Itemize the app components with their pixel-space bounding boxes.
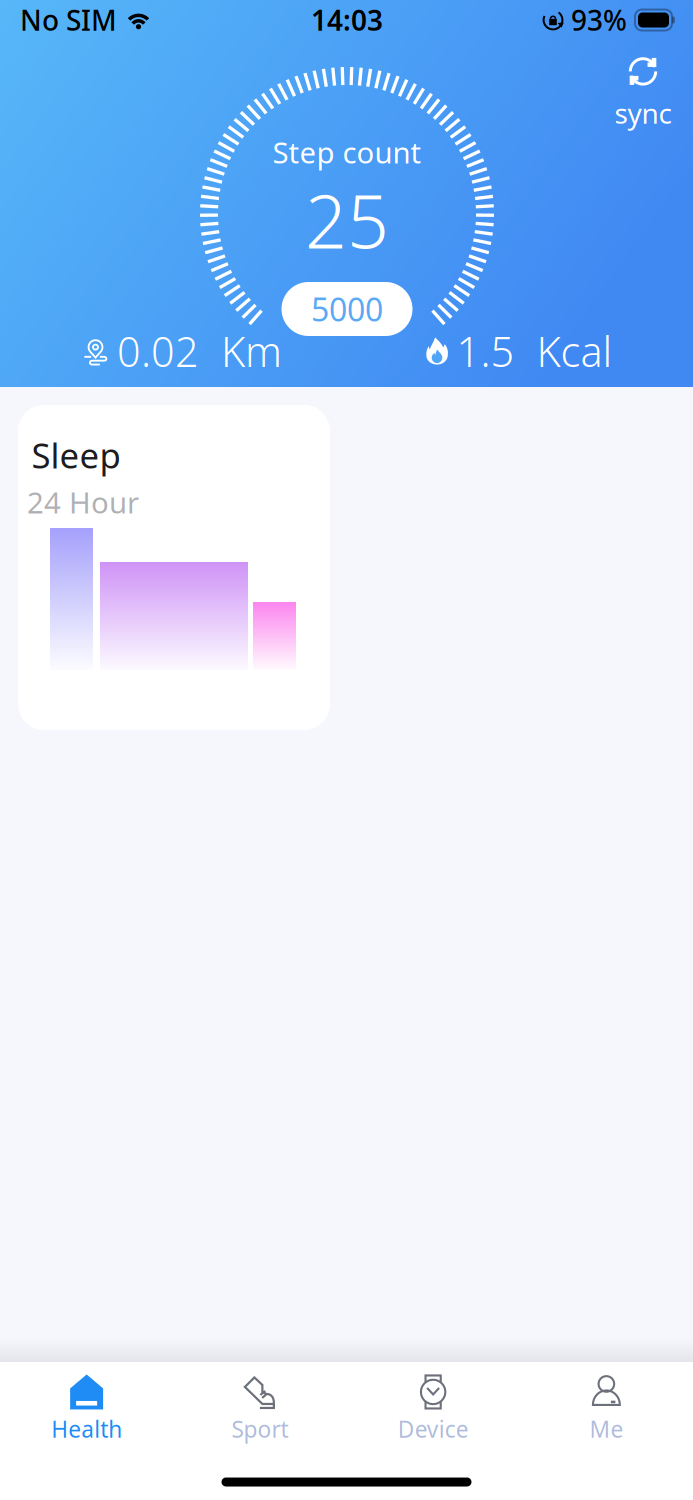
staticText: Me xyxy=(589,1414,623,1444)
staticText: Sleep xyxy=(31,432,120,478)
button[interactable]: Me xyxy=(520,1362,693,1452)
staticText: 0.02 Km xyxy=(117,324,282,378)
staticText: sync xyxy=(614,94,671,132)
button[interactable]: 5000 xyxy=(281,282,412,336)
button[interactable]: Device xyxy=(346,1362,520,1452)
staticText: Device xyxy=(398,1414,469,1444)
staticText: 93% xyxy=(571,1,627,39)
staticText: 14:03 xyxy=(311,1,383,39)
staticText: No SIM xyxy=(20,1,117,39)
button[interactable]: Sync xyxy=(614,52,671,132)
staticText: Step count xyxy=(272,132,421,171)
button[interactable]: Health xyxy=(0,1362,173,1452)
staticText: Sport xyxy=(231,1414,288,1444)
button[interactable]: Sport xyxy=(173,1362,346,1452)
staticText: 24 Hour xyxy=(27,482,139,521)
staticText: 25 xyxy=(305,171,389,269)
staticText: 1.5 Kcal xyxy=(456,324,612,378)
staticText: 5000 xyxy=(311,288,383,330)
staticText: Health xyxy=(51,1414,122,1444)
